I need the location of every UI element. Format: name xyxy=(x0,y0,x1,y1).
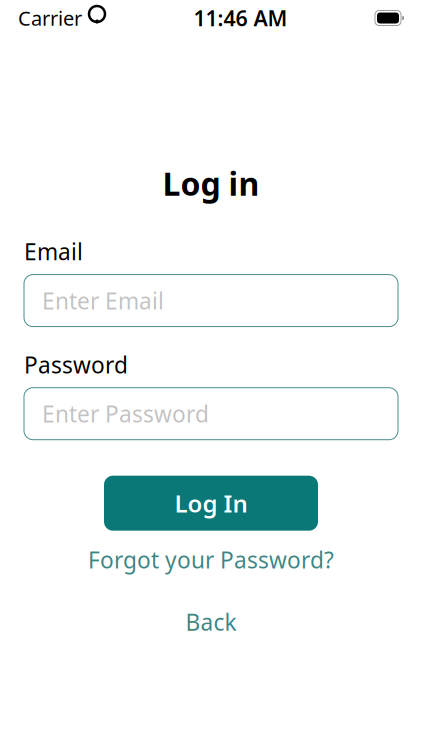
staticText: 11:46 AM xyxy=(193,4,287,32)
staticText: Forgot your Password? xyxy=(88,545,334,575)
button[interactable]: Forgot your Password? xyxy=(72,539,350,581)
staticText: Password xyxy=(24,350,128,380)
staticText: Back xyxy=(185,607,236,637)
staticText: Log in xyxy=(162,162,259,204)
staticText: Email xyxy=(24,236,83,267)
staticText: Enter Password xyxy=(42,399,209,429)
staticText: Log In xyxy=(174,487,247,519)
staticText: Carrier xyxy=(18,5,82,31)
button[interactable]: Back xyxy=(165,601,256,643)
button[interactable]: Log In xyxy=(104,476,318,531)
staticText: Enter Email xyxy=(42,285,164,316)
